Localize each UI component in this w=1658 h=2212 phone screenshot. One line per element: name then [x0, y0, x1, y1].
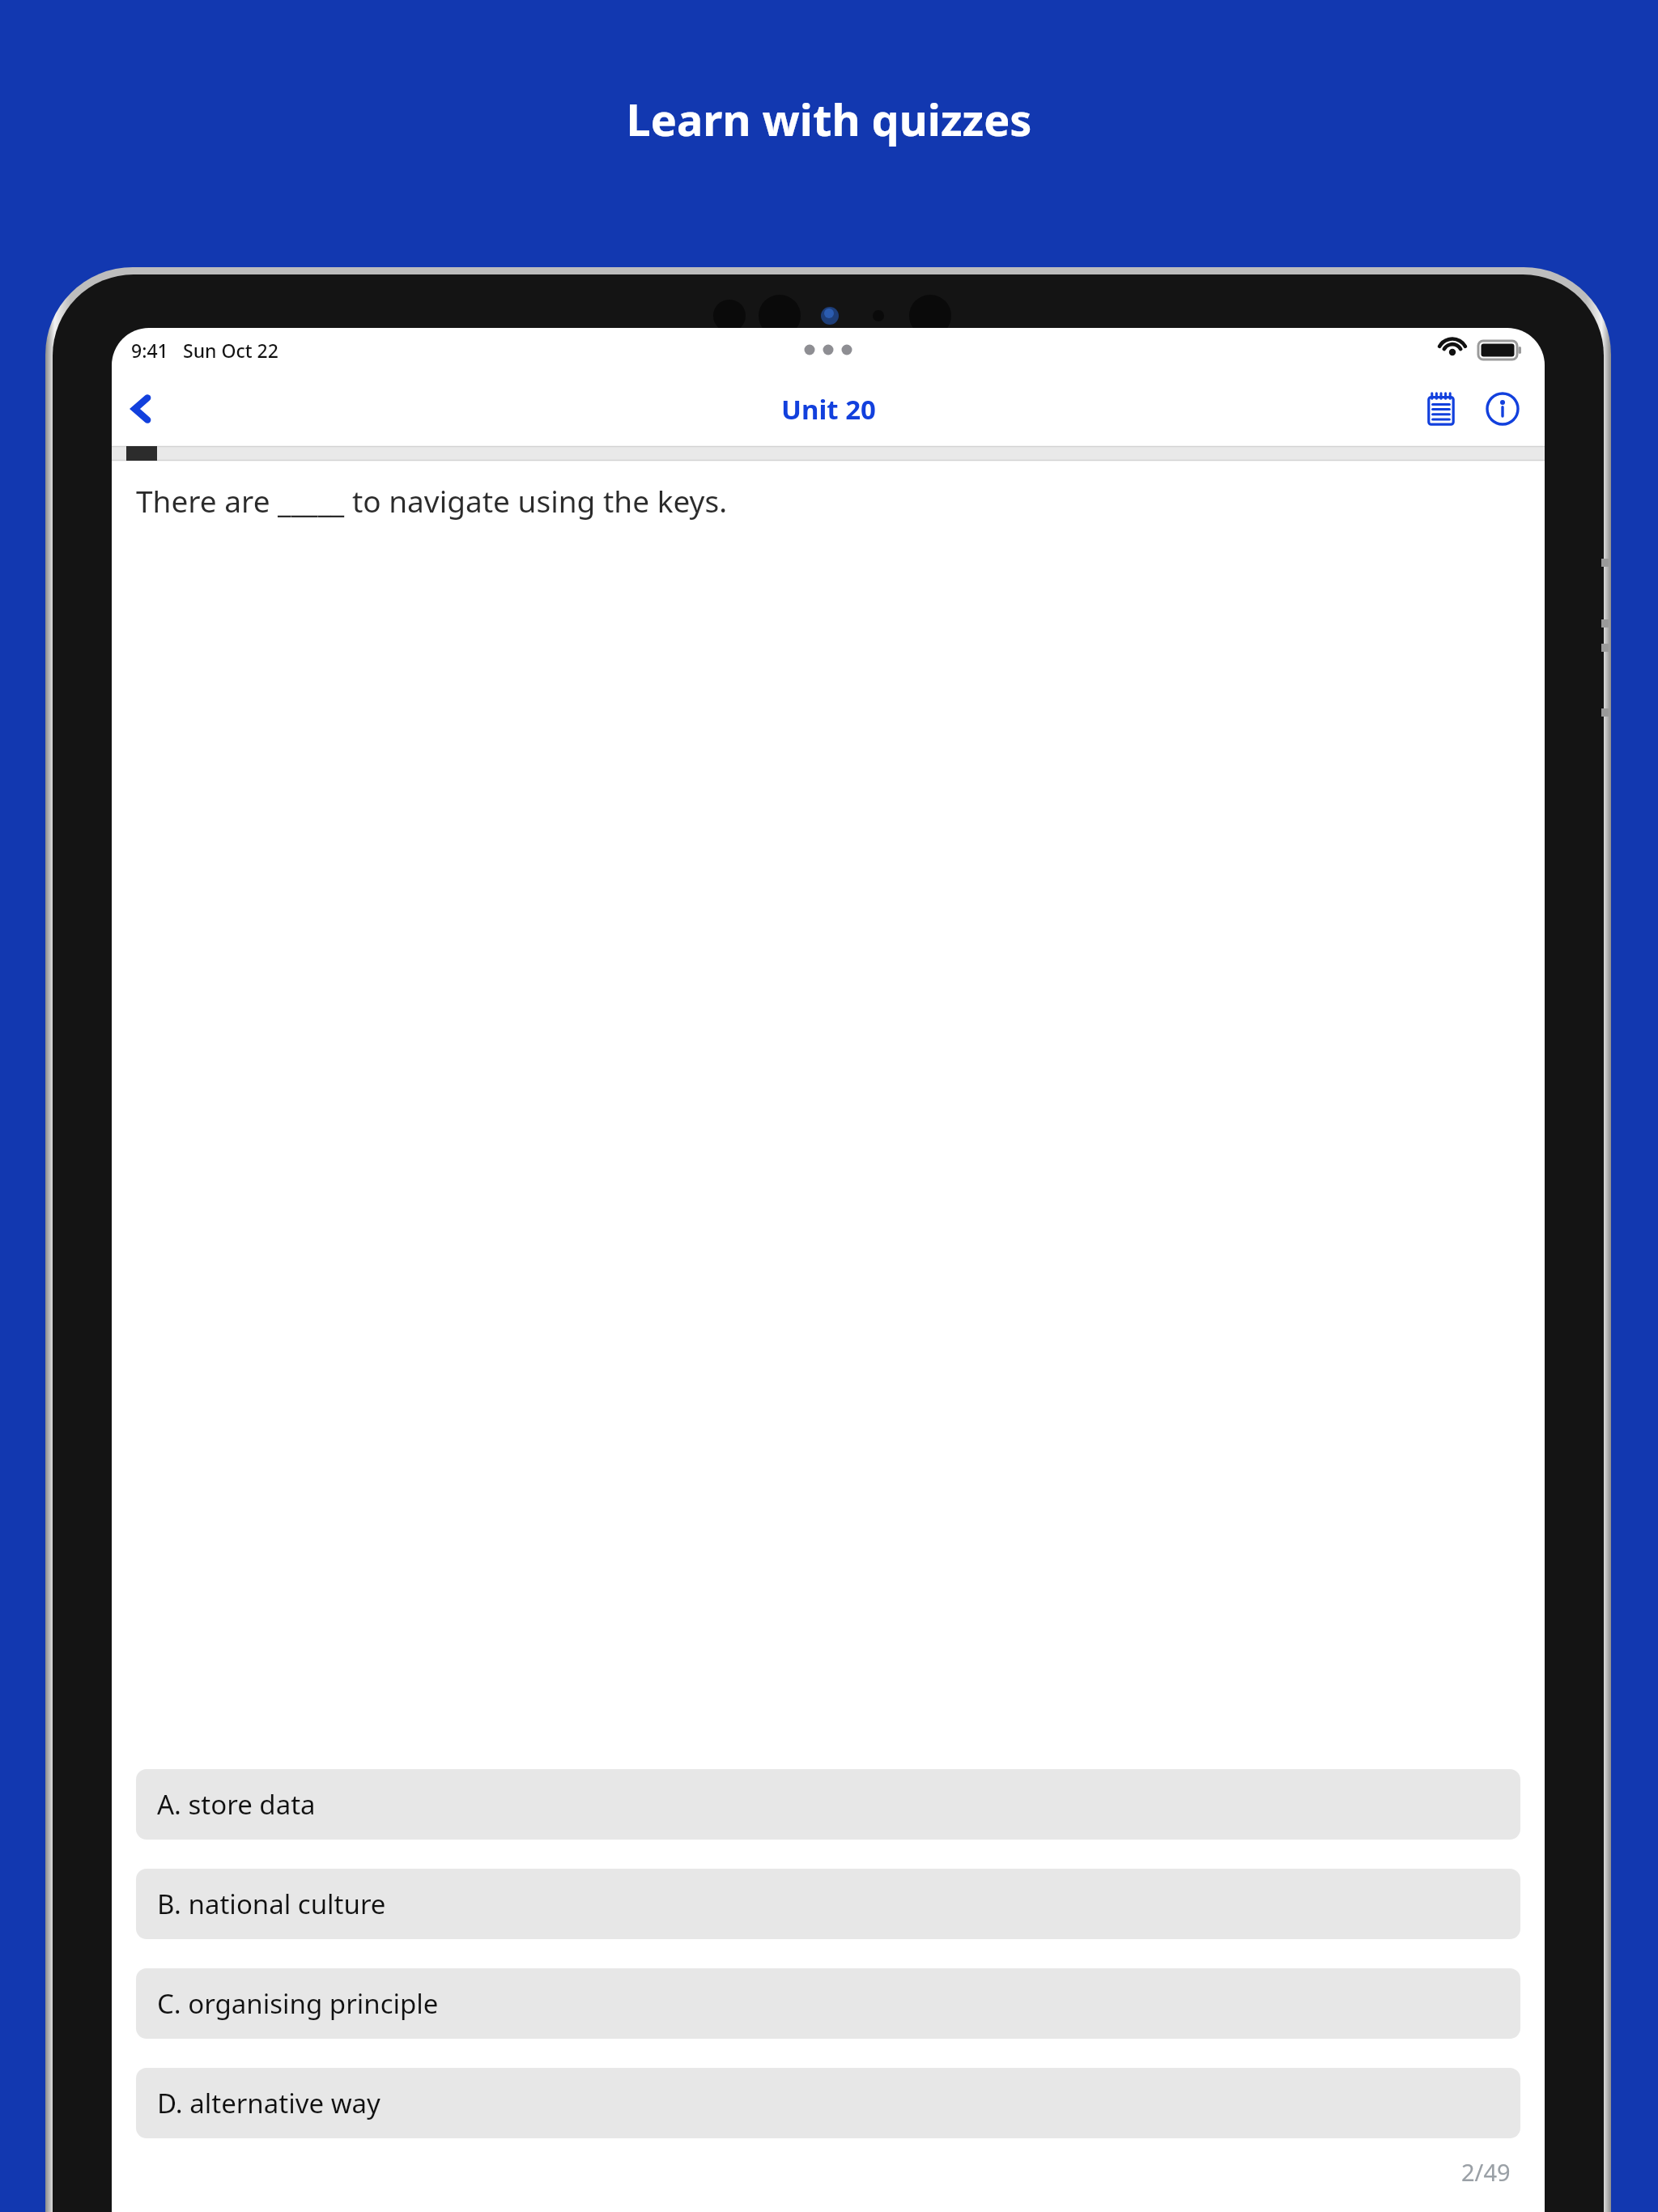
button[interactable]: Back — [112, 378, 173, 440]
staticText: Sun Oct 22 — [183, 338, 278, 363]
staticText: 9:41 — [131, 338, 168, 363]
button[interactable]: C. organising principle — [136, 1968, 1520, 2039]
button[interactable]: A. store data — [136, 1769, 1520, 1840]
staticText: Learn with quizzes — [0, 89, 1658, 149]
staticText: B. national culture — [157, 1886, 386, 1922]
button[interactable]: Notes — [1410, 378, 1472, 440]
button[interactable]: D. alternative way — [136, 2068, 1520, 2138]
staticText: C. organising principle — [157, 1985, 439, 2022]
staticText: There are _____ to navigate using the ke… — [136, 480, 728, 521]
staticText: D. alternative way — [157, 2085, 380, 2121]
staticText: Unit 20 — [781, 391, 876, 428]
button[interactable]: B. national culture — [136, 1869, 1520, 1939]
staticText: 2/49 — [1461, 2156, 1511, 2188]
button[interactable]: Information — [1472, 378, 1533, 440]
staticText: A. store data — [157, 1786, 316, 1823]
